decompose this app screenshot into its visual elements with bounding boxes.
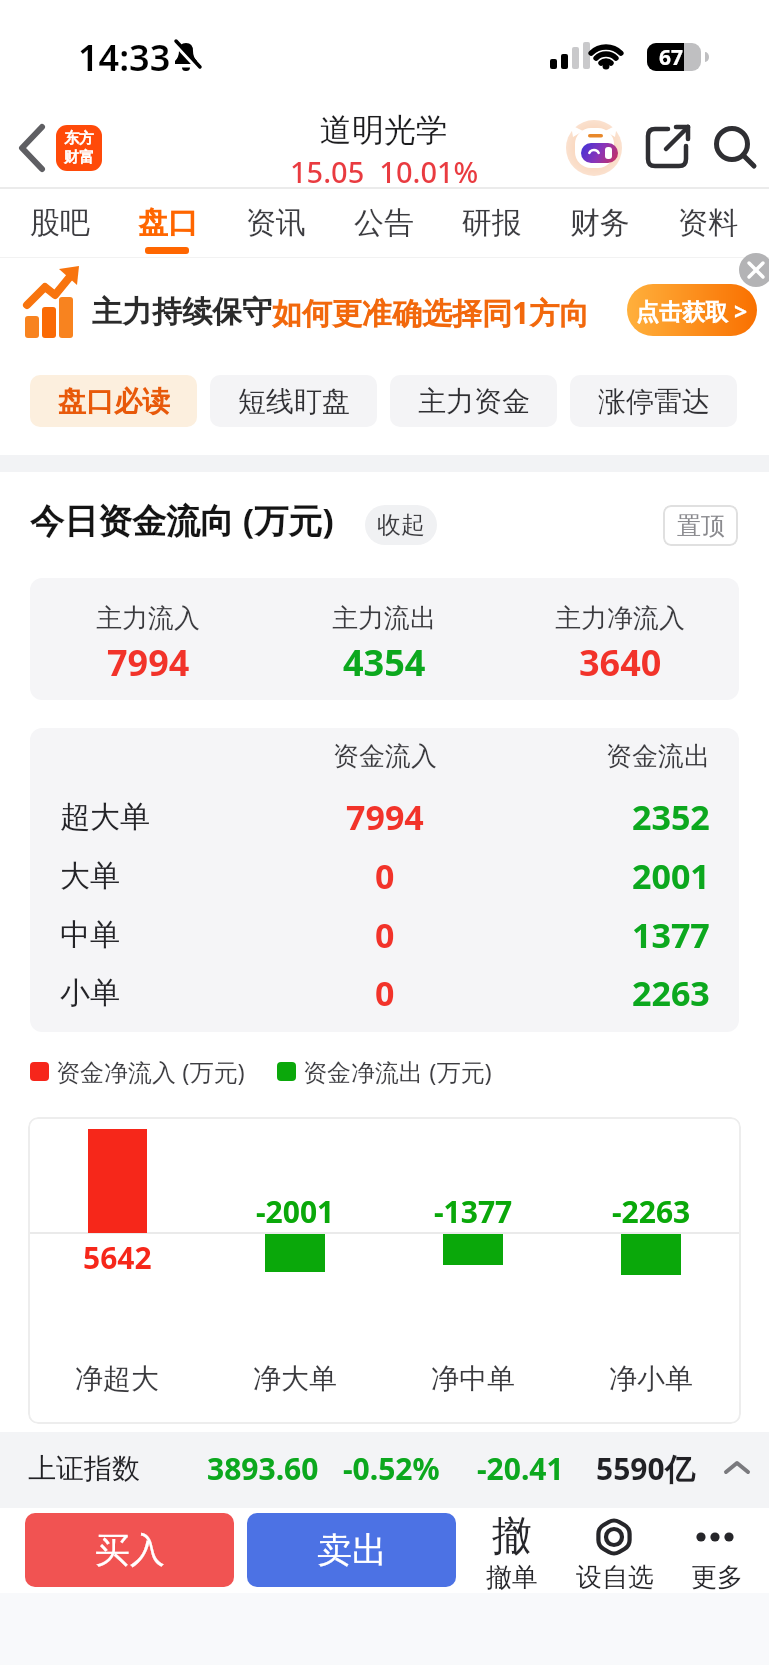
staticText: 研报: [462, 204, 522, 242]
button[interactable]: 资料: [654, 192, 762, 254]
staticText: -2263: [612, 1191, 691, 1232]
staticText: 卖出: [317, 1528, 387, 1572]
button[interactable]: 收起: [365, 505, 437, 545]
button[interactable]: [712, 124, 760, 172]
staticText: 大单: [60, 857, 120, 895]
staticText: -20.41: [477, 1448, 564, 1489]
staticText: 点击获取 >: [636, 295, 748, 326]
staticText: 撤单: [486, 1561, 538, 1594]
button[interactable]: [738, 252, 769, 288]
staticText: 7994: [346, 794, 424, 840]
button[interactable]: [18, 125, 46, 171]
staticText: 设自选: [576, 1561, 654, 1594]
button[interactable]: 财务: [546, 192, 654, 254]
staticText: 股吧: [30, 204, 90, 242]
staticText: 撤: [492, 1510, 532, 1560]
button[interactable]: [0, 1432, 769, 1508]
staticText: 盘口: [138, 204, 198, 242]
button[interactable]: 设自选: [575, 1510, 655, 1594]
button[interactable]: [646, 126, 692, 170]
staticText: 净中单: [431, 1361, 515, 1396]
staticText: 5590亿: [596, 1448, 695, 1489]
button[interactable]: 公告: [330, 192, 438, 254]
staticText: 如何更准确选择同1方向: [272, 292, 590, 333]
staticText: 3640: [579, 638, 662, 687]
button[interactable]: [0, 258, 769, 362]
staticText: 资金净流出 (万元): [303, 1055, 492, 1088]
button[interactable]: 盘口: [114, 192, 222, 254]
staticText: 超大单: [60, 798, 150, 836]
staticText: 0: [375, 970, 395, 1016]
staticText: 小单: [60, 974, 120, 1012]
staticText: 盘口必读: [58, 384, 170, 419]
staticText: 主力持续保守: [92, 293, 272, 331]
staticText: 67: [659, 43, 684, 72]
staticText: 2001: [632, 853, 710, 899]
staticText: 主力流入: [96, 602, 200, 635]
button[interactable]: 股吧: [6, 192, 114, 254]
staticText: 7994: [107, 638, 190, 687]
staticText: 4354: [343, 638, 426, 687]
button[interactable]: 撤: [480, 1510, 544, 1594]
staticText: 财务: [570, 204, 630, 242]
staticText: 0: [375, 853, 395, 899]
staticText: 公告: [354, 204, 414, 242]
staticText: -2001: [256, 1191, 335, 1232]
staticText: 净大单: [253, 1361, 337, 1396]
staticText: 今日资金流向 (万元): [30, 497, 334, 543]
button[interactable]: 主力资金: [390, 375, 557, 427]
button[interactable]: 置顶: [663, 505, 738, 546]
button[interactable]: 买入: [25, 1513, 234, 1587]
staticText: 15.05 10.01%: [290, 152, 479, 191]
staticText: 0: [375, 912, 395, 958]
button[interactable]: 盘口必读: [30, 375, 197, 427]
staticText: 2263: [632, 970, 710, 1016]
staticText: 买入: [95, 1528, 165, 1572]
staticText: 短线盯盘: [238, 384, 350, 419]
staticText: 资料: [678, 204, 738, 242]
staticText: 3893.60: [207, 1448, 319, 1489]
staticText: 财富: [64, 148, 94, 167]
staticText: 更多: [691, 1561, 743, 1594]
staticText: 净小单: [609, 1361, 693, 1396]
button[interactable]: 更多: [675, 1510, 759, 1594]
staticText: 主力资金: [418, 384, 530, 419]
staticText: 涨停雷达: [598, 384, 710, 419]
button[interactable]: 研报: [438, 192, 546, 254]
staticText: 2352: [632, 794, 710, 840]
staticText: 道明光学: [320, 110, 448, 150]
button[interactable]: 短线盯盘: [210, 375, 377, 427]
button[interactable]: 资讯: [222, 192, 330, 254]
button[interactable]: 卖出: [247, 1513, 456, 1587]
button[interactable]: 涨停雷达: [570, 375, 737, 427]
staticText: 主力净流入: [555, 602, 685, 635]
staticText: 主力流出: [332, 602, 436, 635]
staticText: 东方: [64, 129, 94, 148]
staticText: -1377: [434, 1191, 513, 1232]
staticText: 资讯: [246, 204, 306, 242]
staticText: 收起: [377, 510, 425, 540]
staticText: 资金流出: [606, 740, 710, 773]
staticText: 置顶: [677, 511, 725, 541]
staticText: 上证指数: [28, 1451, 140, 1486]
staticText: 净超大: [75, 1361, 159, 1396]
staticText: 中单: [60, 916, 120, 954]
button[interactable]: 东方: [56, 125, 102, 171]
staticText: 5642: [83, 1237, 152, 1278]
staticText: 资金流入: [333, 740, 437, 773]
staticText: -0.52%: [343, 1448, 440, 1489]
staticText: 资金净流入 (万元): [56, 1055, 245, 1088]
staticText: 1377: [632, 912, 710, 958]
button[interactable]: 点击获取 >: [627, 284, 757, 336]
staticText: 14:33: [78, 33, 171, 82]
button[interactable]: [563, 117, 625, 179]
